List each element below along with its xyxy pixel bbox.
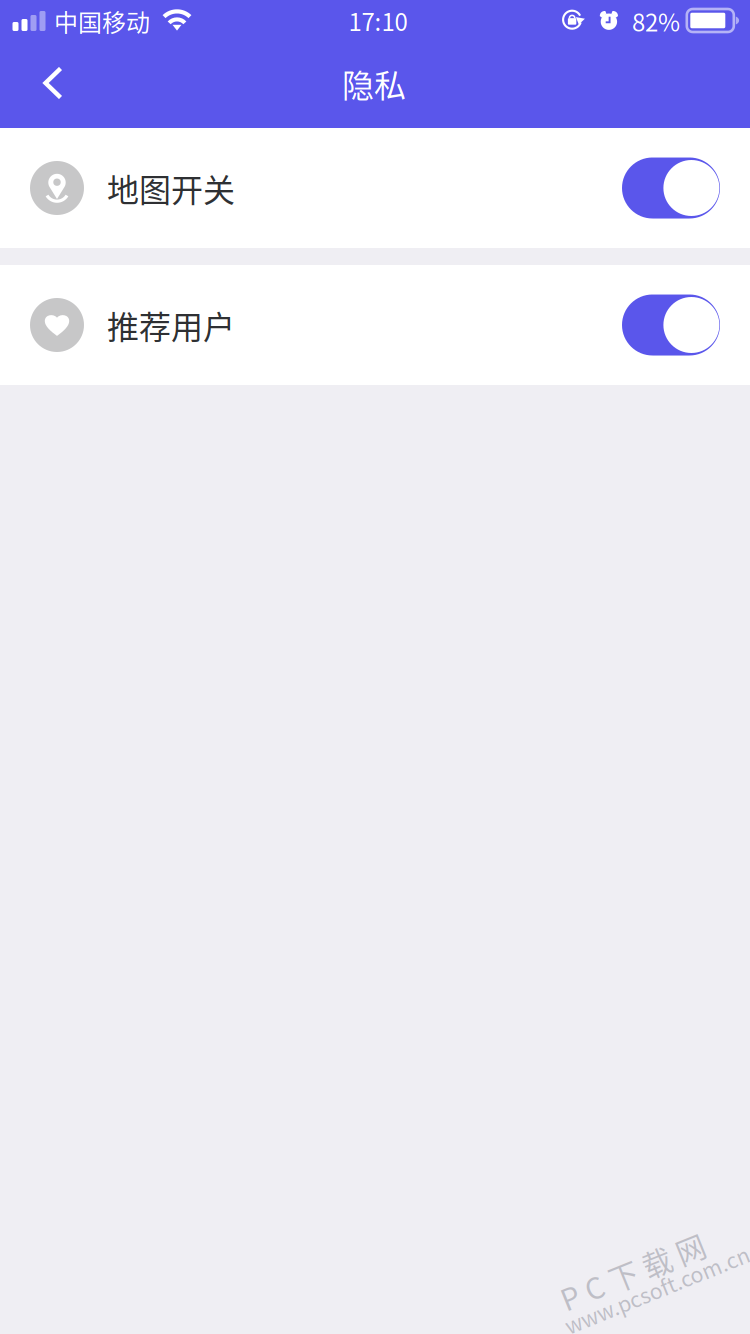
staticText: 82% bbox=[632, 4, 680, 38]
button[interactable]: 推荐用户 bbox=[0, 265, 750, 385]
staticText: 地图开关 bbox=[107, 165, 235, 211]
staticText: 推荐用户 bbox=[107, 302, 235, 348]
button[interactable]: 地图开关 bbox=[0, 128, 750, 248]
staticText: 隐私 bbox=[342, 60, 406, 107]
staticText: P C 下 载 网 bbox=[558, 1246, 711, 1288]
button[interactable]: Back bbox=[11, 41, 95, 125]
staticText: 中国移动 bbox=[54, 4, 150, 38]
staticText: 17:10 bbox=[348, 3, 407, 38]
staticText: www.pcsoft.com.cn bbox=[552, 1278, 749, 1308]
